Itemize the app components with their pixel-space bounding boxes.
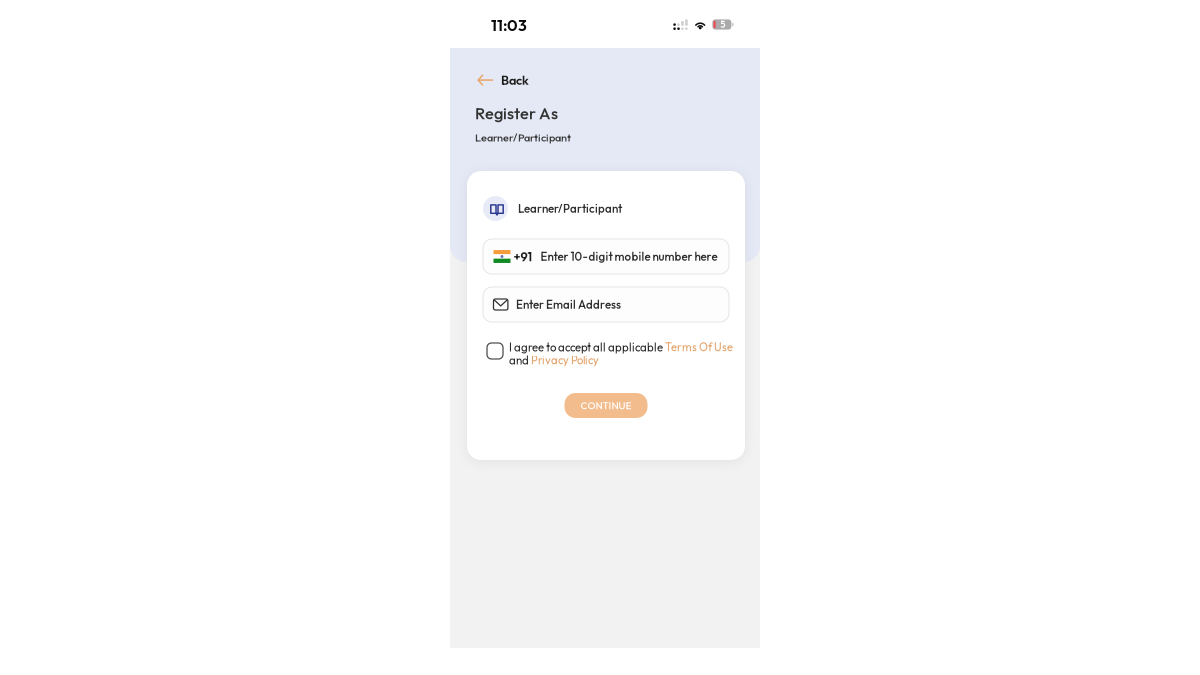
button[interactable]: Back [476, 69, 530, 91]
staticText: 11:03 [491, 15, 527, 35]
staticText: Register As [475, 103, 558, 124]
staticText: Back [501, 72, 529, 88]
staticText: I agree to accept all applicable [509, 340, 665, 354]
staticText: Learner/Participant [475, 131, 571, 144]
staticText: Learner/Participant [518, 201, 622, 216]
staticText: Enter 10-digit mobile number here [540, 249, 717, 264]
staticText: Enter Email Address [516, 297, 621, 312]
button[interactable]: I agree to accept all applicable [487, 340, 735, 368]
staticText: +91 [513, 248, 532, 264]
staticText: CONTINUE [580, 399, 631, 412]
staticText: Privacy Policy [531, 353, 599, 367]
staticText: and [509, 353, 531, 367]
staticText: Terms Of Use [665, 340, 733, 354]
button[interactable]: CONTINUE [564, 393, 647, 418]
staticText: 5 [721, 19, 726, 30]
